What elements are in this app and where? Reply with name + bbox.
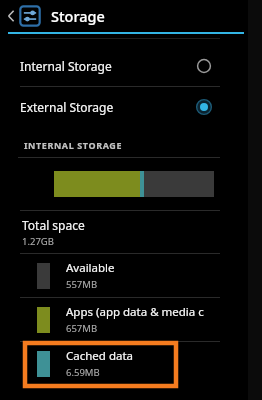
staticText: Available — [66, 260, 115, 276]
staticText: Total space — [22, 217, 85, 233]
staticText: Storage — [51, 6, 105, 26]
staticText: 657MB — [66, 322, 98, 335]
button[interactable]: External Storage — [0, 87, 248, 127]
staticText: Cached data — [66, 348, 134, 364]
staticText: 1.27GB — [22, 235, 54, 248]
button[interactable]: Total space — [0, 211, 248, 253]
button[interactable]: Available — [0, 254, 248, 297]
staticText: Apps (app data & media c — [66, 304, 204, 320]
other: Settings — [19, 5, 41, 27]
button[interactable]: Internal Storage — [0, 46, 248, 86]
button[interactable]: Cached data — [0, 342, 248, 385]
staticText: Internal Storage — [20, 58, 112, 74]
staticText: 557MB — [66, 278, 98, 291]
staticText: INTERNAL STORAGE — [24, 139, 123, 151]
button[interactable]: Back — [0, 0, 248, 32]
staticText: External Storage — [20, 99, 114, 115]
other: Back — [5, 5, 17, 27]
staticText: 6.59MB — [66, 366, 100, 379]
button[interactable]: Apps (app data & media c — [0, 298, 248, 341]
